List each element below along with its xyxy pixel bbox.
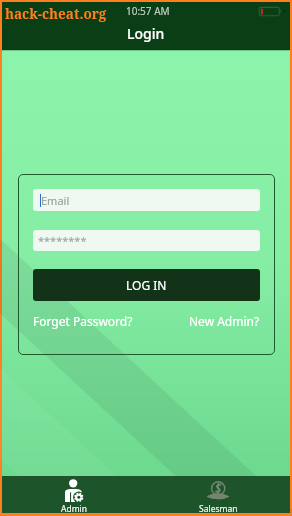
staticText: ******** — [38, 233, 87, 248]
button[interactable]: Email — [33, 189, 260, 211]
button[interactable]: Admin — [2, 476, 146, 513]
staticText: Salesman — [199, 503, 238, 513]
button[interactable]: ******** — [33, 230, 260, 251]
button[interactable]: New Admin? — [189, 313, 260, 329]
button[interactable]: LOG IN — [33, 269, 260, 301]
button[interactable]: Salesman — [146, 476, 290, 513]
staticText: Admin — [61, 503, 88, 513]
staticText: 10:57 AM — [126, 4, 170, 18]
button[interactable]: Forget Password? — [33, 313, 133, 329]
staticText: hack-cheat.org — [5, 5, 107, 23]
staticText: Login — [127, 24, 165, 43]
staticText: LOG IN — [126, 277, 167, 293]
staticText: Email — [41, 193, 70, 208]
